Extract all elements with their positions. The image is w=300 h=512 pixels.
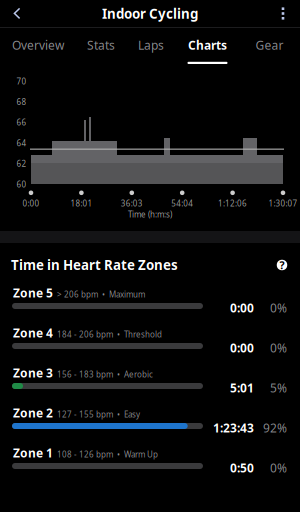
staticText: 0:50 bbox=[230, 460, 254, 476]
staticText: 60 bbox=[16, 179, 26, 190]
button[interactable]: Zone 5 bbox=[0, 282, 300, 322]
staticText: 0% bbox=[270, 300, 287, 316]
button[interactable]: About heart rate zones bbox=[271, 254, 293, 276]
button[interactable]: Zone 2 bbox=[0, 402, 300, 442]
staticText: Zone 3 bbox=[13, 365, 53, 381]
staticText: 127 - 155 bpm • Easy bbox=[57, 409, 140, 420]
button[interactable]: Back bbox=[2, 0, 32, 27]
staticText: > 206 bpm • Maximum bbox=[57, 289, 145, 300]
staticText: Laps bbox=[138, 37, 164, 53]
staticText: 0:00 bbox=[230, 340, 254, 356]
staticText: 62 bbox=[16, 158, 26, 169]
button[interactable]: Gear bbox=[239, 28, 300, 66]
staticText: 66 bbox=[16, 117, 26, 128]
button[interactable]: Zone 4 bbox=[0, 322, 300, 362]
staticText: 1:30:07 bbox=[268, 198, 297, 209]
staticText: 36:03 bbox=[121, 198, 143, 209]
button[interactable]: Zone 3 bbox=[0, 362, 300, 402]
staticText: 70 bbox=[16, 76, 26, 87]
staticText: 5:01 bbox=[230, 380, 254, 396]
staticText: Charts bbox=[188, 37, 227, 53]
staticText: Indoor Cycling bbox=[102, 5, 198, 22]
staticText: 1:23:43 bbox=[213, 420, 254, 436]
staticText: 156 - 183 bpm • Aerobic bbox=[57, 369, 153, 380]
button[interactable]: More options bbox=[268, 0, 298, 27]
staticText: Zone 4 bbox=[13, 325, 53, 341]
staticText: 68 bbox=[16, 97, 26, 107]
staticText: ? bbox=[279, 258, 284, 272]
staticText: Zone 5 bbox=[13, 285, 53, 301]
button[interactable]: Laps bbox=[126, 28, 176, 66]
button[interactable]: Overview bbox=[0, 28, 76, 66]
staticText: 5% bbox=[270, 380, 287, 396]
staticText: 108 - 126 bpm • Warm Up bbox=[57, 449, 158, 460]
staticText: 92% bbox=[263, 420, 287, 436]
button[interactable]: Charts bbox=[176, 28, 239, 66]
staticText: 54:04 bbox=[171, 198, 193, 209]
staticText: Gear bbox=[255, 37, 283, 53]
button[interactable]: Zone 1 bbox=[0, 442, 300, 482]
staticText: 184 - 206 bpm • Threshold bbox=[57, 329, 162, 340]
staticText: Zone 1 bbox=[13, 445, 53, 461]
staticText: 64 bbox=[16, 138, 26, 148]
staticText: 0% bbox=[270, 340, 287, 356]
staticText: Time in Heart Rate Zones bbox=[11, 256, 178, 274]
staticText: 18:01 bbox=[70, 198, 92, 209]
staticText: 0:00 bbox=[230, 300, 254, 316]
staticText: Stats bbox=[87, 37, 115, 53]
staticText: Zone 2 bbox=[13, 405, 53, 421]
staticText: 0% bbox=[270, 460, 287, 476]
button[interactable]: Stats bbox=[76, 28, 126, 66]
staticText: 1:12:06 bbox=[218, 198, 247, 209]
staticText: Time (h:m:s) bbox=[128, 209, 172, 220]
staticText: 0:00 bbox=[22, 198, 39, 209]
staticText: Overview bbox=[12, 37, 64, 53]
